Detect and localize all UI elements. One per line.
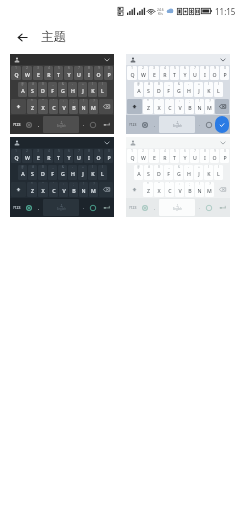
- button[interactable]: +: [194, 165, 203, 180]
- button[interactable]: 7: [190, 149, 199, 163]
- button[interactable]: ': [165, 99, 174, 114]
- button[interactable]: 5: [54, 66, 63, 80]
- button[interactable]: Language: [204, 199, 214, 216]
- button[interactable]: $: [38, 82, 47, 97]
- button[interactable]: ,: [151, 199, 158, 216]
- button[interactable]: &: [174, 82, 183, 97]
- button[interactable]: Emoji: [24, 116, 34, 133]
- button[interactable]: English: [159, 116, 195, 133]
- button[interactable]: Enter: [215, 116, 229, 133]
- button[interactable]: Language: [88, 199, 98, 216]
- button[interactable]: _: [48, 82, 57, 97]
- button[interactable]: Emoji: [140, 116, 150, 133]
- button[interactable]: 8: [84, 149, 93, 163]
- button[interactable]: :: [175, 182, 184, 197]
- button[interactable]: *: [27, 99, 37, 114]
- button[interactable]: ?123: [11, 199, 23, 216]
- button[interactable]: 0: [220, 66, 229, 80]
- button[interactable]: ": [154, 182, 164, 197]
- button[interactable]: -: [184, 82, 193, 97]
- button[interactable]: 7: [190, 66, 199, 80]
- button[interactable]: 3: [149, 149, 159, 163]
- button[interactable]: 5: [170, 149, 179, 163]
- button[interactable]: 2: [138, 66, 148, 80]
- button[interactable]: -: [184, 165, 193, 180]
- button[interactable]: ?: [89, 182, 98, 197]
- button[interactable]: Shift: [11, 99, 26, 114]
- button[interactable]: 6: [64, 149, 73, 163]
- button[interactable]: 3: [149, 66, 159, 80]
- button[interactable]: @: [134, 165, 143, 180]
- button[interactable]: ": [38, 182, 48, 197]
- button[interactable]: &: [174, 165, 183, 180]
- button[interactable]: 6: [180, 149, 189, 163]
- button[interactable]: 7: [74, 149, 83, 163]
- button[interactable]: 0: [220, 149, 229, 163]
- button[interactable]: *: [27, 182, 37, 197]
- button[interactable]: ?: [205, 99, 214, 114]
- button[interactable]: $: [154, 165, 163, 180]
- button[interactable]: 0: [104, 149, 113, 163]
- button[interactable]: (: [204, 82, 213, 97]
- button[interactable]: .: [80, 116, 87, 133]
- button[interactable]: @: [18, 82, 27, 97]
- button[interactable]: @: [134, 82, 143, 97]
- button[interactable]: @: [18, 165, 27, 180]
- button[interactable]: 0: [104, 66, 113, 80]
- button[interactable]: Backspace: [99, 99, 113, 114]
- button[interactable]: #: [28, 82, 37, 97]
- button[interactable]: _: [164, 165, 173, 180]
- button[interactable]: Keyboard settings: [10, 54, 114, 134]
- button[interactable]: ;: [69, 182, 78, 197]
- button[interactable]: ": [154, 99, 164, 114]
- button[interactable]: Back: [12, 27, 32, 47]
- button[interactable]: ): [98, 82, 107, 97]
- button[interactable]: Backspace: [99, 182, 113, 197]
- button[interactable]: Backspace: [215, 182, 229, 197]
- button[interactable]: 9: [210, 149, 219, 163]
- button[interactable]: (: [88, 82, 97, 97]
- button[interactable]: Emoji: [140, 199, 150, 216]
- button[interactable]: _: [164, 82, 173, 97]
- button[interactable]: 8: [84, 66, 93, 80]
- button[interactable]: English: [43, 199, 79, 216]
- button[interactable]: 4: [44, 66, 53, 80]
- button[interactable]: ?123: [127, 199, 139, 216]
- button[interactable]: 5: [170, 66, 179, 80]
- button[interactable]: Language: [204, 116, 214, 133]
- button[interactable]: Enter: [99, 116, 113, 133]
- button[interactable]: 6: [64, 66, 73, 80]
- button[interactable]: 8: [200, 66, 209, 80]
- button[interactable]: &: [58, 165, 67, 180]
- button[interactable]: ;: [69, 99, 78, 114]
- button[interactable]: 9: [94, 66, 103, 80]
- button[interactable]: _: [48, 165, 57, 180]
- button[interactable]: ?: [205, 182, 214, 197]
- button[interactable]: !: [79, 99, 88, 114]
- button[interactable]: (: [88, 165, 97, 180]
- button[interactable]: 5: [54, 149, 63, 163]
- button[interactable]: ;: [185, 182, 194, 197]
- button[interactable]: ): [214, 165, 223, 180]
- button[interactable]: 2: [22, 66, 32, 80]
- button[interactable]: Emoji: [24, 199, 34, 216]
- button[interactable]: .: [80, 199, 87, 216]
- button[interactable]: ?: [89, 99, 98, 114]
- button[interactable]: ): [98, 165, 107, 180]
- button[interactable]: :: [59, 182, 68, 197]
- button[interactable]: #: [144, 82, 153, 97]
- button[interactable]: $: [38, 165, 47, 180]
- button[interactable]: English: [43, 116, 79, 133]
- button[interactable]: *: [143, 99, 153, 114]
- button[interactable]: 4: [44, 149, 53, 163]
- button[interactable]: Shift: [11, 182, 26, 197]
- button[interactable]: Keyboard settings: [10, 137, 114, 217]
- button[interactable]: -: [68, 82, 77, 97]
- button[interactable]: ,: [35, 199, 42, 216]
- button[interactable]: !: [79, 182, 88, 197]
- button[interactable]: ': [49, 99, 58, 114]
- button[interactable]: 1: [11, 149, 21, 163]
- button[interactable]: &: [58, 82, 67, 97]
- button[interactable]: ': [165, 182, 174, 197]
